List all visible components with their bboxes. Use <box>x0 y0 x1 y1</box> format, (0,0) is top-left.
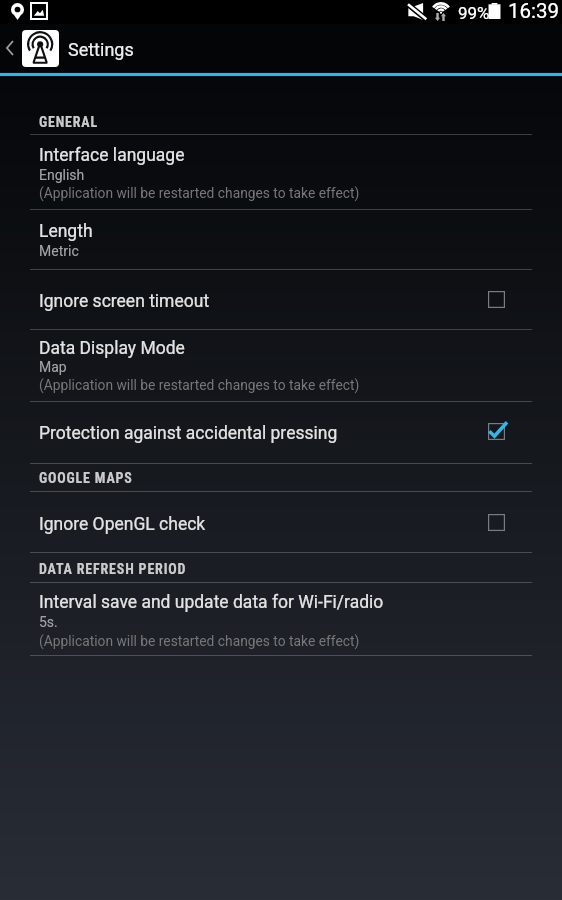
staticText: Data Display Mode <box>39 338 185 359</box>
button[interactable] <box>0 329 562 401</box>
staticText: 99% <box>458 3 490 23</box>
staticText: (Application will be restarted changes t… <box>39 185 360 201</box>
button[interactable]: Unchecked <box>475 501 517 543</box>
staticText: Ignore OpenGL check <box>39 514 206 535</box>
staticText: Interface language <box>39 145 185 166</box>
staticText: Settings <box>68 39 134 60</box>
staticText: GOOGLE MAPS <box>39 470 133 486</box>
staticText: Map <box>39 359 67 375</box>
button[interactable]: Checked <box>475 410 517 452</box>
staticText: 16:39 <box>508 0 560 23</box>
button[interactable] <box>0 582 562 655</box>
button[interactable] <box>0 135 562 209</box>
staticText: Protection against accidental pressing <box>39 423 338 444</box>
button[interactable] <box>0 209 562 269</box>
staticText: Ignore screen timeout <box>39 291 210 312</box>
staticText: Length <box>39 221 93 242</box>
staticText: (Application will be restarted changes t… <box>39 377 360 393</box>
staticText: GENERAL <box>39 114 99 130</box>
button[interactable] <box>0 269 562 329</box>
button[interactable]: Unchecked <box>475 278 517 320</box>
staticText: DATA REFRESH PERIOD <box>39 561 187 577</box>
button[interactable] <box>0 401 562 463</box>
staticText: English <box>39 167 85 183</box>
staticText: 5s. <box>39 614 58 630</box>
staticText: Interval save and update data for Wi-Fi/… <box>39 592 384 613</box>
button[interactable] <box>0 491 562 552</box>
staticText: Metric <box>39 243 79 259</box>
button[interactable]: Navigate up <box>0 24 20 72</box>
staticText: (Application will be restarted changes t… <box>39 633 360 649</box>
